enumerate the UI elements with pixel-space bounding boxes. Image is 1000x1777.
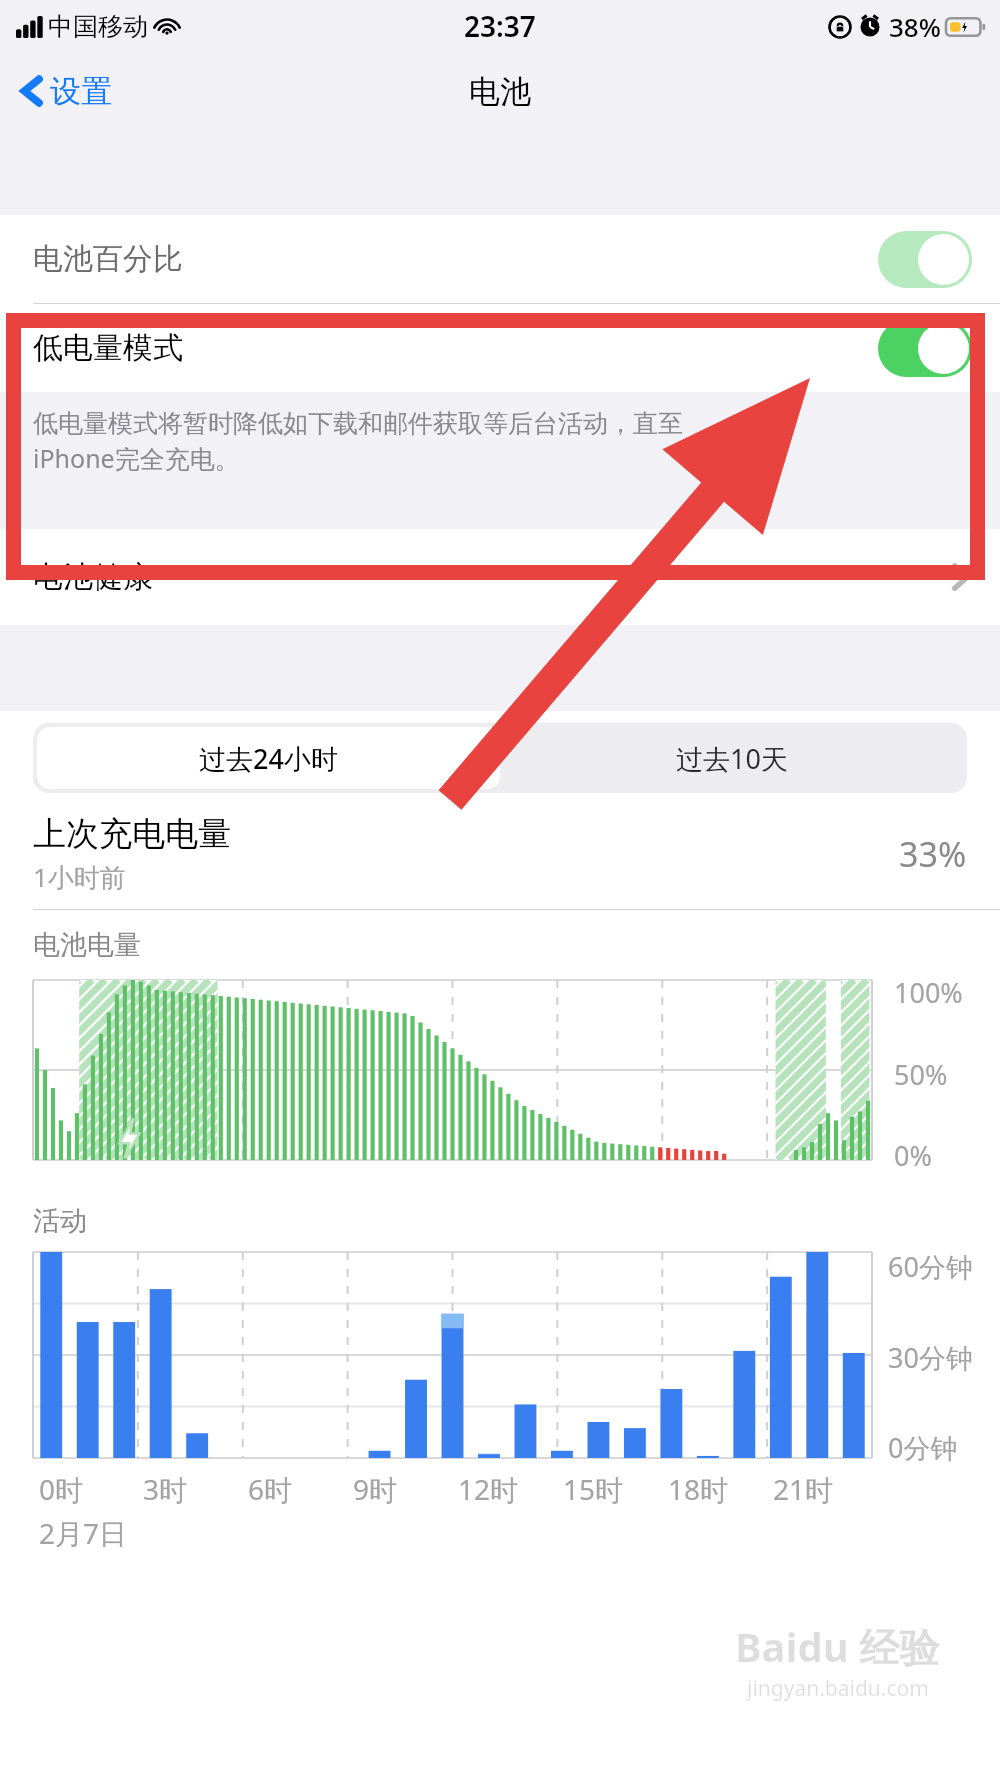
staticText: 60分钟 <box>888 1248 973 1285</box>
staticText: 1小时前 <box>33 859 126 895</box>
button[interactable]: 低电量模式 <box>878 320 972 377</box>
staticText: 0分钟 <box>888 1429 958 1466</box>
staticText: 18时 <box>668 1470 729 1508</box>
staticText: 2月7日 <box>39 1514 128 1552</box>
staticText: 低电量模式将暂时降低如下载和邮件获取等后台活动，直至 iPhone完全充电。 <box>33 408 683 475</box>
staticText: 0% <box>894 1137 932 1174</box>
staticText: Baidu 经验 <box>735 1619 940 1674</box>
staticText: 21时 <box>773 1470 834 1508</box>
button[interactable]: 过去10天 <box>500 727 963 789</box>
staticText: 33% <box>899 831 967 877</box>
button[interactable]: 电池健康 <box>0 529 1000 625</box>
staticText: 电池健康 <box>33 558 153 596</box>
button[interactable]: 电池百分比 <box>878 231 972 288</box>
staticText: 设置 <box>50 72 112 111</box>
staticText: 电池 <box>469 72 531 111</box>
staticText: 电池电量 <box>33 928 141 962</box>
staticText: 38% <box>889 9 941 44</box>
staticText: 活动 <box>33 1204 87 1238</box>
staticText: 12时 <box>458 1470 519 1508</box>
staticText: 9时 <box>353 1470 398 1508</box>
staticText: 15时 <box>563 1470 624 1508</box>
staticText: 过去10天 <box>676 740 788 777</box>
staticText: 50% <box>894 1056 948 1093</box>
staticText: jingyan.baidu.com <box>747 1674 929 1703</box>
staticText: 3时 <box>143 1470 188 1508</box>
staticText: 电池百分比 <box>33 240 183 278</box>
staticText: 低电量模式 <box>33 329 183 367</box>
button[interactable]: 电池百分比 <box>0 215 1000 303</box>
staticText: 30分钟 <box>888 1339 973 1376</box>
button[interactable]: 过去24小时 <box>37 727 500 789</box>
staticText: 100% <box>894 974 963 1011</box>
staticText: 中国移动 <box>48 11 148 42</box>
staticText: 0时 <box>39 1470 84 1508</box>
staticText: 23:37 <box>464 7 536 45</box>
staticText: 过去24小时 <box>199 740 338 777</box>
staticText: 6时 <box>248 1470 293 1508</box>
button[interactable]: 低电量模式 <box>0 304 1000 392</box>
staticText: 上次充电电量 <box>33 813 231 855</box>
button[interactable]: 设置 <box>0 65 128 117</box>
